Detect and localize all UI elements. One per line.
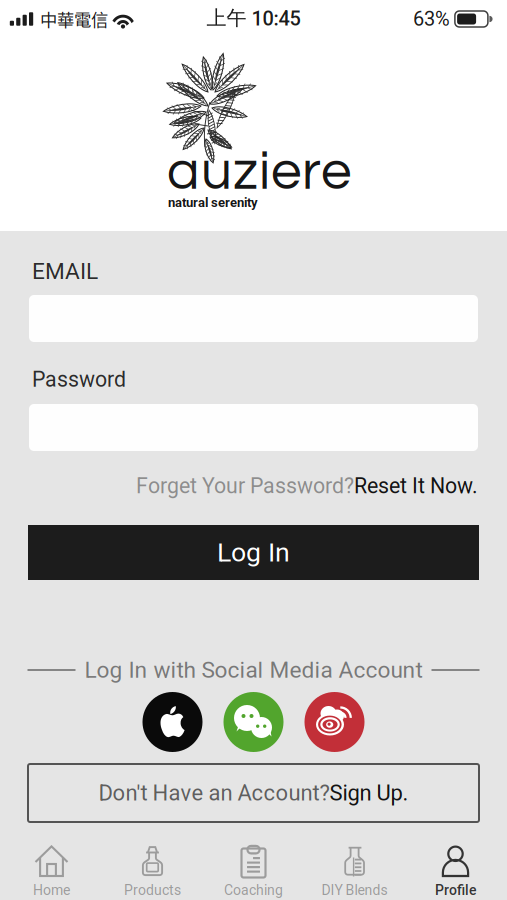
staticText: Password xyxy=(32,367,126,392)
staticText: EMAIL xyxy=(32,258,98,285)
staticText: 中華電信 xyxy=(40,6,108,32)
staticText: 上午 10:45 xyxy=(206,5,300,31)
button[interactable]: Sign in with Weibo xyxy=(304,692,364,752)
staticText: Profile xyxy=(435,882,476,898)
button[interactable]: DIY Blends xyxy=(304,833,405,900)
button[interactable]: Products xyxy=(102,833,203,900)
staticText: auziere xyxy=(167,144,351,200)
staticText: DIY Blends xyxy=(321,882,387,898)
staticText: Log In xyxy=(217,537,290,568)
button[interactable]: Sign in with Apple xyxy=(142,692,202,752)
staticText: Don't Have an Account? xyxy=(98,780,329,806)
button[interactable]: Home xyxy=(1,833,102,900)
staticText: Forget Your Password? xyxy=(136,473,354,498)
staticText: 63% xyxy=(413,7,450,31)
staticText: Log In with Social Media Account xyxy=(84,657,422,683)
staticText: Reset It Now. xyxy=(354,473,478,498)
button[interactable]: Forget Your Password? xyxy=(28,473,478,499)
staticText: Products xyxy=(124,882,181,898)
staticText: natural serenity xyxy=(168,195,258,210)
button[interactable]: Coaching xyxy=(203,833,304,900)
staticText: Home xyxy=(33,882,70,898)
button[interactable]: Log In xyxy=(28,525,479,580)
button[interactable]: Profile xyxy=(405,833,506,900)
button[interactable]: Sign in with WeChat xyxy=(223,692,283,752)
staticText: Coaching xyxy=(224,882,283,898)
staticText: Sign Up. xyxy=(329,780,408,806)
button[interactable]: Don't Have an Account? xyxy=(28,764,479,822)
